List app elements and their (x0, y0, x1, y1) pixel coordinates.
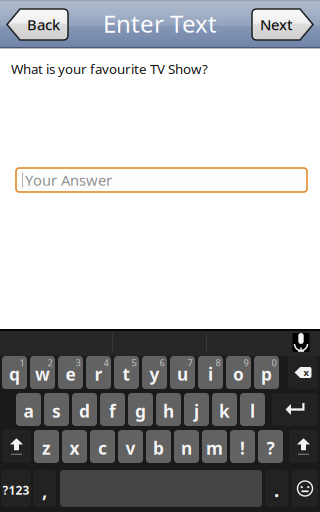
staticText: ! (240, 436, 245, 459)
button[interactable]: j (184, 393, 209, 426)
button[interactable]: 5 (114, 356, 139, 389)
staticText: . (274, 478, 279, 502)
button[interactable]: k (212, 393, 237, 426)
button[interactable]: 1 (2, 356, 27, 389)
staticText: ?123 (2, 482, 29, 498)
button[interactable]: 9 (226, 356, 251, 389)
staticText: 6 (159, 356, 164, 369)
staticText: q (9, 362, 20, 385)
button[interactable]: m (202, 430, 227, 463)
button[interactable]: v (118, 430, 143, 463)
button[interactable]: 8 (198, 356, 223, 389)
staticText: o (233, 362, 244, 385)
staticText: s (52, 399, 61, 422)
button[interactable]: 6 (142, 356, 167, 389)
staticText: h (163, 399, 174, 422)
staticText: f (109, 399, 116, 422)
button[interactable]: . (265, 470, 288, 507)
staticText: Back (27, 15, 60, 34)
staticText: x (69, 436, 79, 459)
button[interactable]: Voice input (286, 329, 316, 356)
button[interactable]: z (34, 430, 59, 463)
staticText: 9 (243, 356, 248, 369)
button[interactable]: n (174, 430, 199, 463)
button[interactable]: 2 (30, 356, 55, 389)
button[interactable]: b (146, 430, 171, 463)
staticText: What is your favourite TV Show? (11, 60, 208, 78)
button[interactable]: ? (258, 430, 283, 463)
staticText: t (122, 362, 130, 385)
button[interactable]: ! (230, 430, 255, 463)
staticText: l (250, 399, 255, 422)
staticText: d (79, 399, 90, 422)
button[interactable]: h (156, 393, 181, 426)
staticText: 4 (103, 356, 108, 369)
button[interactable]: s (44, 393, 69, 426)
staticText: Enter Text (103, 8, 217, 39)
button[interactable]: , (33, 470, 56, 507)
button[interactable] (272, 393, 318, 426)
button[interactable]: Back (7, 9, 68, 40)
button[interactable]: a (16, 393, 41, 426)
staticText: Your Answer (25, 170, 112, 190)
button[interactable]: c (90, 430, 115, 463)
staticText: j (194, 399, 199, 422)
staticText: c (98, 436, 107, 459)
staticText: 2 (47, 356, 52, 369)
button[interactable] (292, 470, 318, 507)
staticText: w (35, 362, 50, 385)
button[interactable]: f (100, 393, 125, 426)
staticText: ? (266, 436, 274, 459)
button[interactable]: 3 (58, 356, 83, 389)
button[interactable]: ?123 (1, 470, 31, 507)
staticText: i (208, 362, 213, 385)
staticText: e (65, 362, 75, 385)
staticText: y (149, 362, 159, 385)
button[interactable]: 0 (254, 356, 279, 389)
staticText: k (219, 399, 230, 422)
staticText: z (42, 436, 51, 459)
staticText: m (206, 436, 223, 459)
staticText: p (261, 362, 272, 385)
staticText: r (94, 362, 102, 385)
staticText: x (303, 366, 308, 379)
staticText: 3 (75, 356, 80, 369)
staticText: v (125, 436, 135, 459)
staticText: 0 (271, 356, 276, 369)
button[interactable]: 7 (170, 356, 195, 389)
staticText: Next (260, 15, 293, 34)
button[interactable]: d (72, 393, 97, 426)
staticText: n (181, 436, 192, 459)
button[interactable] (2, 430, 31, 463)
staticText: , (42, 478, 47, 502)
button[interactable]: g (128, 393, 153, 426)
button[interactable]: 4 (86, 356, 111, 389)
staticText: 8 (215, 356, 220, 369)
staticText: 1 (19, 356, 24, 369)
staticText: g (135, 399, 146, 422)
staticText: 5 (131, 356, 136, 369)
button[interactable]: Next (252, 9, 313, 40)
staticText: u (177, 362, 188, 385)
button[interactable] (289, 430, 318, 463)
button[interactable]: x (62, 430, 87, 463)
staticText: a (23, 399, 33, 422)
staticText: 7 (187, 356, 192, 369)
staticText: b (153, 436, 164, 459)
button[interactable]: l (240, 393, 265, 426)
button[interactable]: x (288, 356, 318, 389)
